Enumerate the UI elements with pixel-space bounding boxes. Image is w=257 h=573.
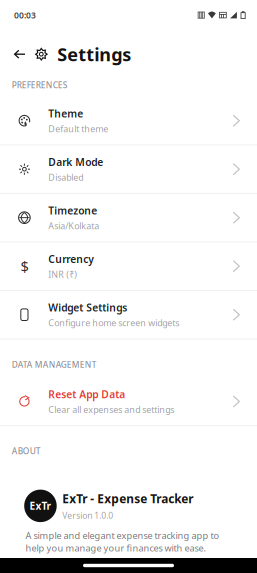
staticText: Version 1.0.0 [62, 510, 113, 521]
button[interactable]: Reset App Data [0, 378, 257, 426]
staticText: Widget Settings [48, 301, 127, 315]
staticText: Clear all expenses and settings [48, 403, 174, 415]
staticText: Dark Mode [48, 155, 103, 169]
staticText: Configure home screen widgets [48, 317, 179, 329]
staticText: INR (₹) [48, 268, 77, 280]
staticText: Reset App Data [48, 387, 125, 401]
staticText: ABOUT [12, 445, 41, 457]
staticText: DATA MANAGEMENT [12, 359, 97, 370]
button[interactable]: Dark Mode [0, 145, 257, 194]
button[interactable]: Widget Settings [0, 291, 257, 339]
staticText: ExTr - Expense Tracker [62, 490, 193, 507]
staticText: Default theme [48, 123, 108, 135]
staticText: ExTr [29, 499, 51, 513]
staticText: 00:03 [14, 9, 36, 21]
staticText: Disabled [48, 171, 83, 183]
button[interactable]: Timezone [0, 194, 257, 242]
staticText: Settings [57, 42, 131, 66]
staticText: Theme [48, 107, 83, 121]
staticText: $ [20, 256, 28, 276]
staticText: A simple and elegant expense tracking ap… [25, 529, 219, 554]
staticText: Asia/Kolkata [48, 220, 99, 232]
staticText: Currency [48, 252, 94, 266]
staticText: PREFERENCES [12, 79, 68, 91]
button[interactable]: Back [11, 42, 29, 66]
staticText: Timezone [48, 204, 97, 218]
button[interactable]: Theme [0, 97, 257, 145]
button[interactable]: $ [0, 242, 257, 291]
